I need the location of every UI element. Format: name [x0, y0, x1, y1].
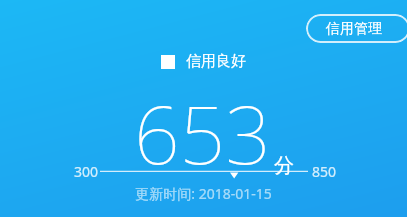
button[interactable]: 信用良好	[161, 52, 246, 71]
staticText: 信用良好	[186, 52, 246, 71]
staticText: 信用管理	[326, 20, 382, 38]
button[interactable]: 信用管理	[306, 14, 407, 43]
staticText: 更新时间: 2018-01-15	[135, 184, 272, 203]
staticText: 850	[312, 162, 337, 181]
staticText: 653	[134, 78, 271, 187]
staticText: 分	[274, 153, 294, 178]
staticText: 300	[74, 162, 99, 181]
